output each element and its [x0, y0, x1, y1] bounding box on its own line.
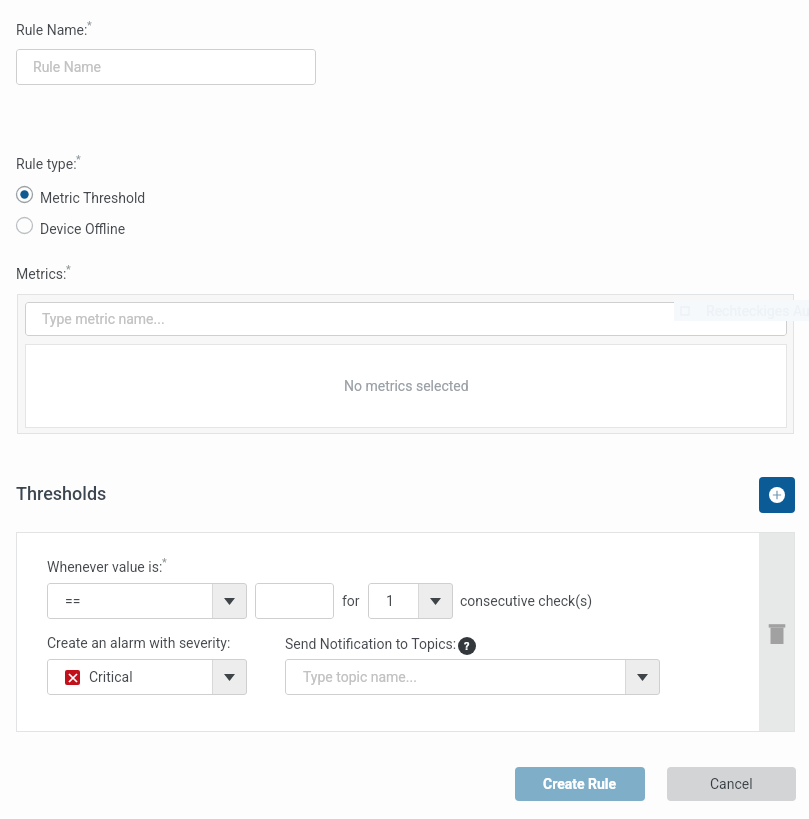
button[interactable]: Metric Threshold — [15, 185, 146, 204]
button[interactable] — [255, 583, 334, 619]
staticText: Whenever value is: — [47, 559, 163, 575]
staticText: Cancel — [710, 776, 753, 792]
staticText: Metrics: — [16, 266, 67, 282]
staticText: * — [87, 19, 92, 32]
staticText: 1 — [386, 593, 394, 609]
button[interactable]: Add threshold — [759, 477, 795, 513]
staticText: * — [162, 556, 167, 569]
button[interactable]: Rule Name — [16, 49, 316, 85]
staticText: Thresholds — [16, 483, 107, 504]
staticText: Device Offline — [40, 221, 126, 237]
button[interactable]: Create Rule — [515, 767, 645, 801]
button[interactable]: Type topic name... — [285, 659, 660, 695]
button[interactable]: == — [47, 583, 247, 619]
staticText: Create an alarm with severity: — [47, 635, 231, 651]
staticText: Rule type: — [16, 156, 77, 172]
staticText: Create Rule — [543, 776, 617, 792]
button[interactable]: 1 — [368, 583, 453, 619]
staticText: consecutive check(s) — [460, 593, 593, 609]
staticText: ? — [464, 640, 470, 653]
staticText: Rechteckiges Ausschneiden — [706, 303, 809, 319]
staticText: * — [66, 263, 71, 276]
button[interactable]: Critical — [47, 659, 247, 695]
button[interactable]: Delete threshold — [759, 532, 795, 732]
staticText: Metric Threshold — [40, 190, 146, 206]
staticText: No metrics selected — [344, 378, 469, 394]
staticText: Send Notification to Topics: — [285, 636, 457, 652]
staticText: for — [342, 593, 360, 609]
button[interactable]: Device Offline — [15, 216, 126, 235]
button[interactable]: Type metric name... — [25, 302, 787, 336]
button[interactable]: Cancel — [667, 767, 796, 801]
staticText: == — [65, 593, 81, 609]
staticText: Rule Name — [33, 59, 101, 75]
staticText: Type topic name... — [303, 669, 417, 685]
staticText: Critical — [89, 669, 133, 685]
staticText: Rule Name: — [16, 22, 88, 38]
button[interactable]: Help — [458, 637, 476, 655]
staticText: Type metric name... — [42, 311, 165, 327]
staticText: * — [76, 153, 81, 166]
